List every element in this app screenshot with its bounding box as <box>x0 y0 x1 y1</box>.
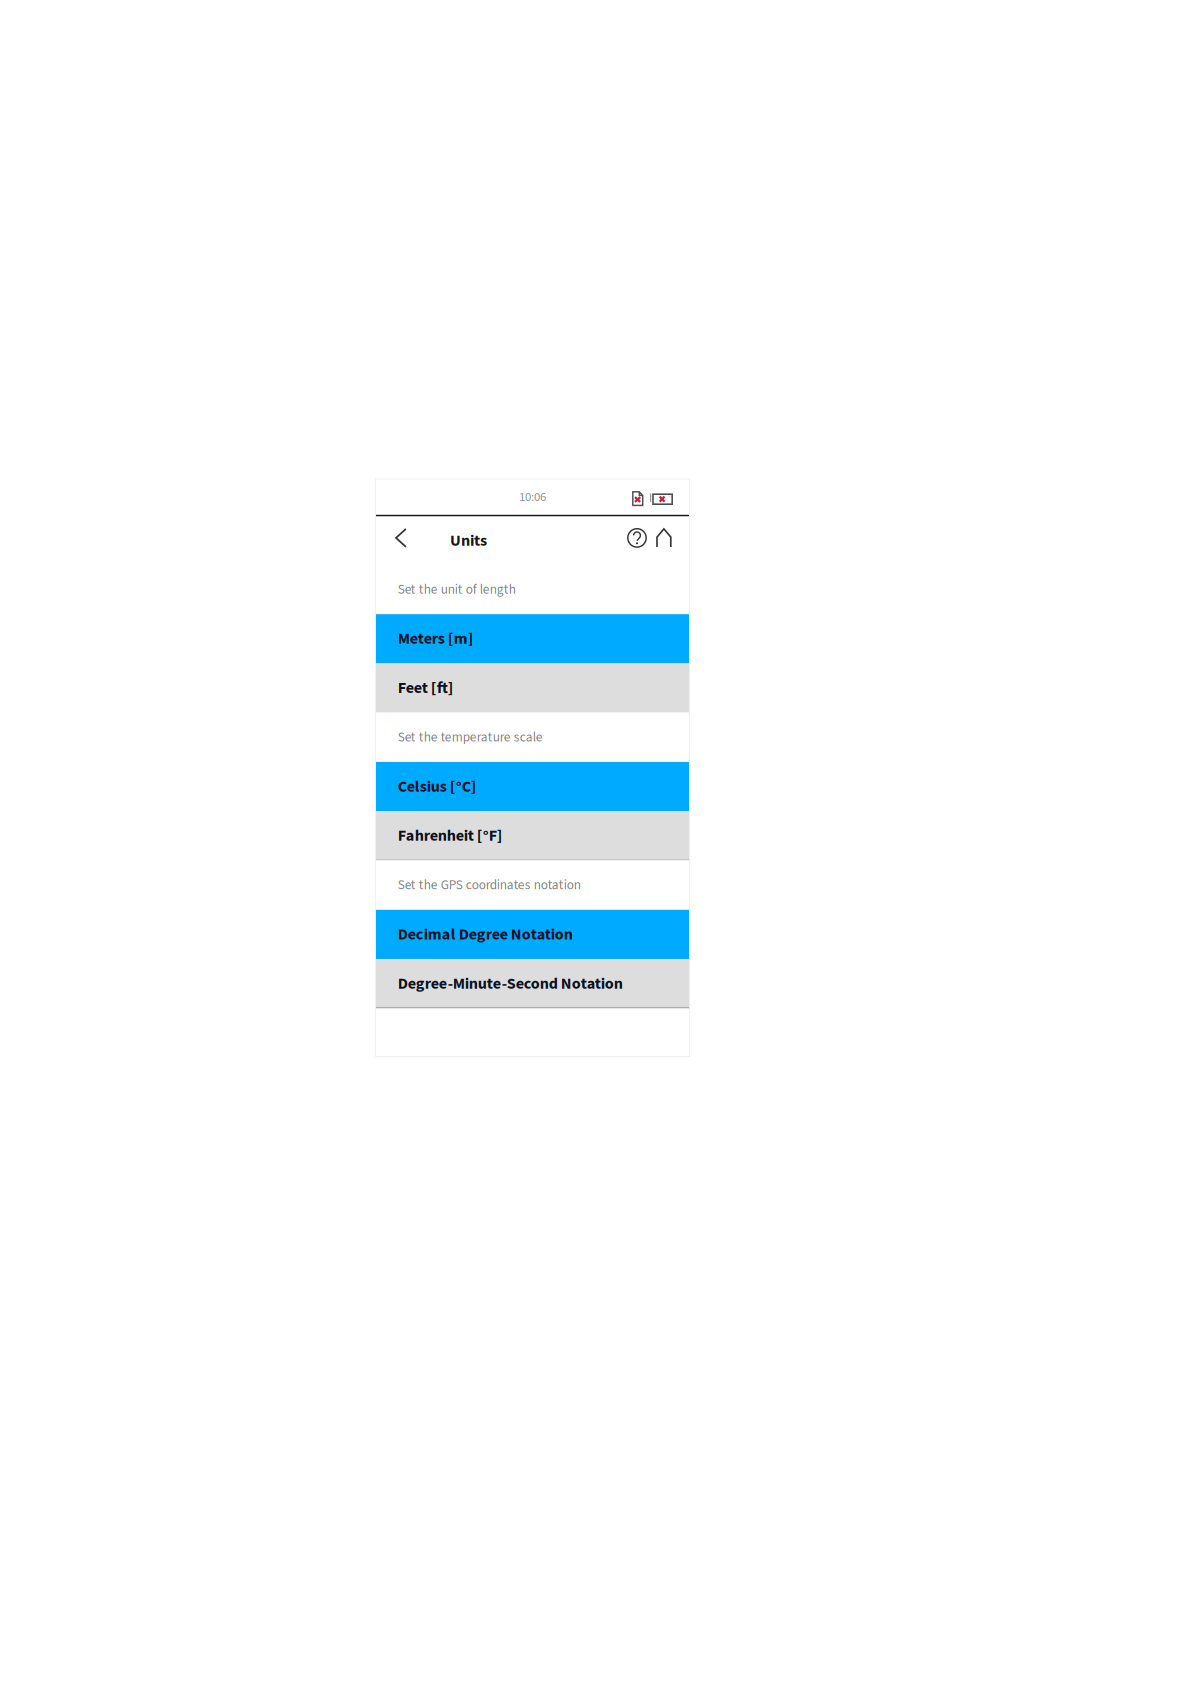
button[interactable]: Back <box>375 516 415 565</box>
button[interactable]: Home <box>375 516 409 565</box>
staticText: Decimal Degree Notation <box>398 923 573 946</box>
staticText: Units <box>450 529 487 552</box>
staticText: Fahrenheit [°F] <box>398 824 503 847</box>
staticText: Set the GPS coordinates notation <box>398 876 581 895</box>
staticText: Degree-Minute-Second Notation <box>398 972 623 995</box>
staticText: 10:06 <box>519 488 546 506</box>
button[interactable]: Feet [ft] <box>375 663 689 713</box>
staticText: Meters [m] <box>398 627 474 650</box>
button[interactable]: Celsius [°C] <box>375 762 689 811</box>
staticText: Set the temperature scale <box>398 728 543 747</box>
button[interactable]: Fahrenheit [°F] <box>375 811 689 860</box>
button[interactable]: Help <box>375 516 407 565</box>
staticText: Feet [ft] <box>398 676 454 699</box>
button[interactable]: Meters [m] <box>375 614 689 663</box>
staticText: Set the unit of length <box>398 580 516 599</box>
button[interactable]: Degree-Minute-Second Notation <box>375 959 689 1008</box>
staticText: Celsius [°C] <box>398 775 477 798</box>
button[interactable]: Decimal Degree Notation <box>375 910 689 959</box>
